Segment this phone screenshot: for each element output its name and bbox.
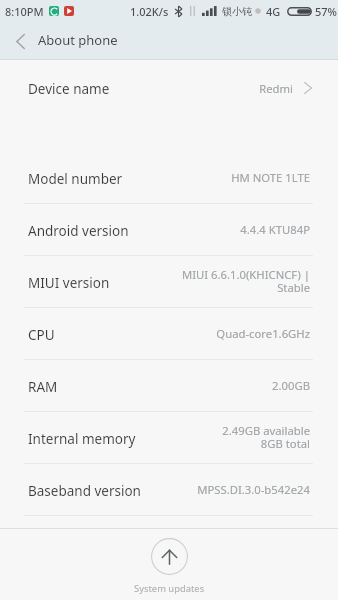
button[interactable]: Android version [0,204,338,255]
button[interactable]: Internal memory [0,412,338,463]
staticText: System updates [134,582,205,595]
staticText: Redmi [259,81,293,96]
staticText: 2.00GB [272,378,310,393]
button[interactable]: RAM [0,360,338,411]
staticText: 4G [266,4,281,19]
staticText: Internal memory [28,430,136,448]
staticText: MIUI version [28,274,110,292]
staticText: 4.4.4 KTU84P [240,222,310,237]
button[interactable]: MIUI version [0,256,338,307]
staticText: 1.02K/s [130,4,169,19]
button[interactable]: Back [0,22,41,58]
staticText: Device name [28,80,110,98]
button[interactable]: Baseband version [0,464,338,515]
staticText: RAM [28,378,58,396]
button[interactable]: CPU [0,308,338,359]
staticText: 2.49GB available 8GB total [222,423,310,452]
staticText: Android version [28,222,129,240]
staticText: CPU [28,326,55,344]
button[interactable]: Device name [0,62,338,114]
staticText: 8:10PM [5,4,44,19]
staticText: MIUI 6.6.1.0(KHICNCF) | Stable [181,267,310,296]
staticText: Baseband version [28,482,141,500]
staticText: Quad-core1.6GHz [216,326,310,341]
staticText: Model number [28,170,123,188]
button[interactable]: System updates [0,529,338,595]
button[interactable]: Model number [0,152,338,203]
staticText: HM NOTE 1LTE [231,170,310,185]
staticText: MPSS.DI.3.0-b542e24 [197,482,310,497]
staticText: About phone [38,31,118,49]
staticText: 57% [315,4,337,19]
staticText: 锁小钝 [222,5,252,18]
